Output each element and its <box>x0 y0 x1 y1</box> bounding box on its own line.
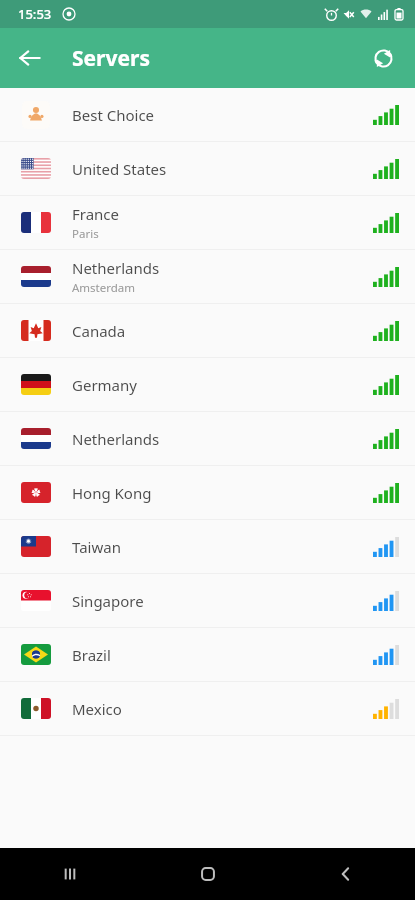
staticText: Brazil <box>72 645 111 665</box>
button[interactable]: Recent apps <box>0 848 139 900</box>
staticText: Taiwan <box>72 537 121 557</box>
staticText: Amsterdam <box>72 280 136 296</box>
button[interactable]: Home <box>139 848 277 900</box>
button[interactable]: Canada <box>0 304 415 358</box>
button[interactable]: Germany <box>0 358 415 412</box>
button[interactable]: Mexico <box>0 682 415 736</box>
staticText: Best Choice <box>72 105 155 125</box>
button[interactable]: Back <box>277 848 415 900</box>
button[interactable]: Singapore <box>0 574 415 628</box>
staticText: Singapore <box>72 591 144 611</box>
staticText: United States <box>72 159 167 179</box>
staticText: Netherlands <box>72 258 160 278</box>
staticText: Mexico <box>72 699 122 719</box>
button[interactable]: France <box>0 196 415 250</box>
staticText: 15:53 <box>18 5 52 23</box>
button[interactable]: Taiwan <box>0 520 415 574</box>
button[interactable]: Netherlands <box>0 412 415 466</box>
staticText: Hong Kong <box>72 483 152 503</box>
staticText: Canada <box>72 321 126 341</box>
button[interactable]: Refresh <box>361 36 405 80</box>
staticText: Netherlands <box>72 429 160 449</box>
button[interactable]: Netherlands <box>0 250 415 304</box>
button[interactable]: Best Choice <box>0 88 415 142</box>
staticText: France <box>72 204 120 224</box>
button[interactable]: United States <box>0 142 415 196</box>
button[interactable]: Brazil <box>0 628 415 682</box>
button[interactable]: Back <box>8 36 52 80</box>
staticText: Germany <box>72 375 137 395</box>
button[interactable]: Hong Kong <box>0 466 415 520</box>
staticText: Servers <box>72 44 150 73</box>
staticText: Paris <box>72 226 99 242</box>
